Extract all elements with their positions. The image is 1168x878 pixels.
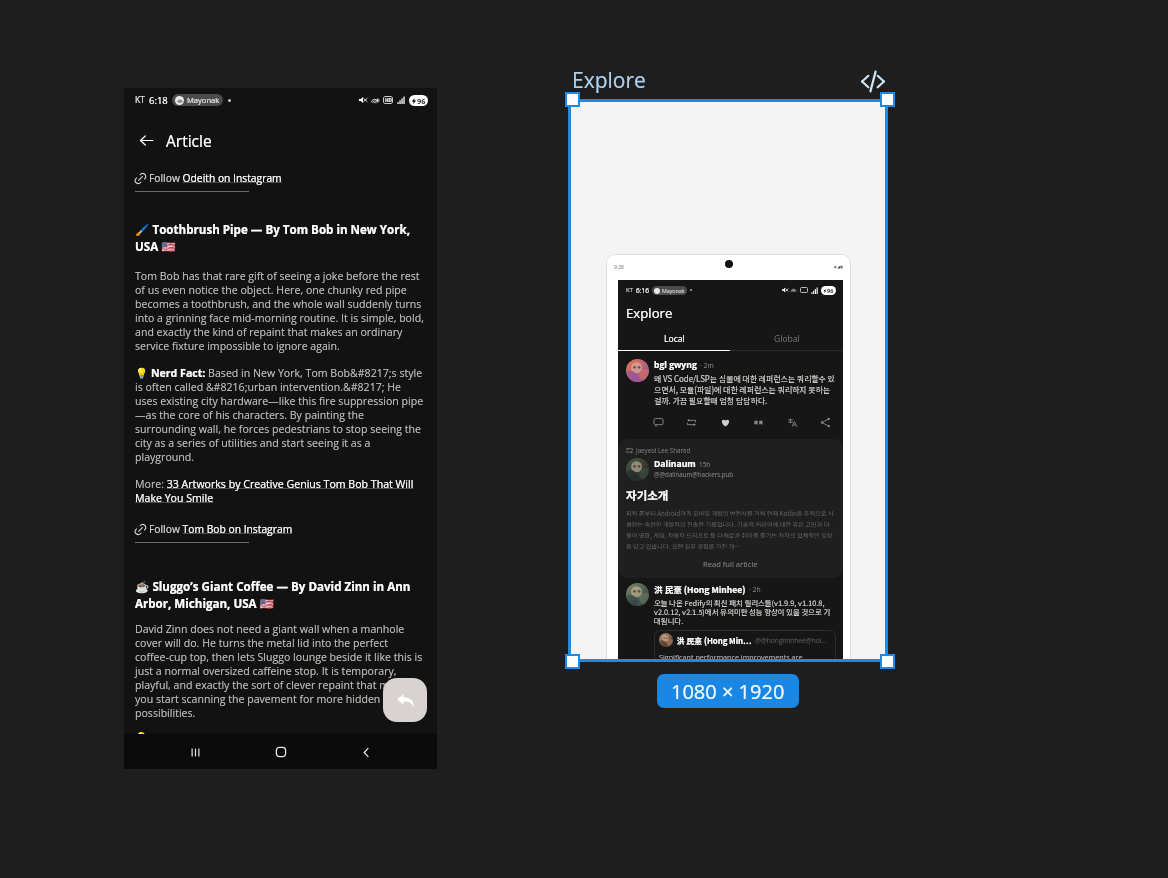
button[interactable]: Back [351, 737, 381, 767]
button[interactable]: Follow Odeith on Instagram [135, 171, 282, 185]
staticText: Explore [572, 66, 646, 95]
staticText: 피처 폰부터 Android까지 모바일 개발의 변천사를 거쳐 현재 Kotl… [626, 509, 835, 551]
staticText: @@dalinaum@hackers.pub [654, 470, 734, 478]
staticText: · 2h [749, 585, 761, 594]
button[interactable]: Share [819, 416, 832, 429]
staticText: KT [626, 286, 633, 294]
staticText: · 2m [700, 361, 714, 370]
staticText: HD [385, 97, 392, 103]
button[interactable]: More: 33 Artworks by Creative Genius Tom… [135, 477, 426, 505]
staticText: Follow Odeith on Instagram [149, 171, 282, 185]
staticText: Global [774, 333, 800, 345]
staticText: Article [166, 130, 212, 151]
button[interactable]: View code [858, 66, 888, 96]
button[interactable]: Global [730, 333, 843, 351]
staticText: Dalinaum [654, 458, 696, 470]
staticText: 96 [827, 287, 834, 295]
staticText: ☕ Sluggo’s Giant Coffee — By David Zinn … [135, 579, 426, 612]
staticText: Mayonak [187, 95, 220, 105]
button[interactable]: Read full article [626, 559, 835, 569]
staticText: 💡 [135, 732, 148, 744]
staticText: Significant performance improvements are [659, 652, 803, 662]
staticText: Mayonak [662, 287, 685, 294]
staticText: 洪 民憙 (Hong Min… [677, 635, 752, 646]
staticText: 💡 Nerd Fact: Based in New York, Tom Bob&… [135, 366, 426, 464]
staticText: 96 [417, 96, 426, 106]
staticText: Read full article [703, 559, 758, 569]
button[interactable]: Quote [752, 416, 765, 429]
button[interactable]: Reply [383, 678, 427, 722]
button[interactable]: Reply [652, 416, 665, 429]
button[interactable]: Follow Tom Bob on Instagram [135, 522, 293, 536]
staticText: Explore [626, 304, 673, 322]
staticText: 오늘 나온 Fedify의 최신 패치 릴리스들(v1.9.9, v1.10.8… [654, 597, 836, 626]
staticText: 🖌️ Toothbrush Pipe — By Tom Bob in New Y… [135, 222, 426, 255]
staticText: 6:16 [636, 286, 649, 295]
staticText: David Zinn does not need a giant wall wh… [135, 622, 426, 720]
staticText: 6:18 [149, 94, 168, 107]
staticText: Follow Tom Bob on Instagram [149, 522, 293, 536]
staticText: KT [135, 94, 145, 106]
staticText: Jaeyeol Lee Shared [636, 446, 691, 454]
button[interactable]: Back [135, 129, 157, 151]
staticText: bgl gwyng [654, 359, 697, 371]
button[interactable]: Home [266, 737, 296, 767]
staticText: 1080 × 1920 [671, 678, 785, 705]
staticText: 洪 民憙 (Hong Minhee) [654, 583, 746, 595]
staticText: 15h [699, 460, 711, 469]
button[interactable]: Local [618, 333, 730, 351]
staticText: Local [664, 333, 685, 345]
staticText: @@hongminhee@hol… [755, 636, 827, 645]
button[interactable]: Boost [685, 416, 698, 429]
button[interactable]: Favourite [719, 416, 732, 429]
button[interactable]: Recents [180, 737, 210, 767]
staticText: Tom Bob has that rare gift of seeing a j… [135, 269, 426, 353]
button[interactable]: Translate [786, 416, 799, 429]
staticText: 왜 VS Code/LSP는 심볼에 대한 레퍼런스는 쿼리할수 있으면서, 모… [654, 373, 836, 406]
staticText: 9:28 [614, 264, 624, 271]
staticText: 자기소개 [626, 487, 669, 504]
